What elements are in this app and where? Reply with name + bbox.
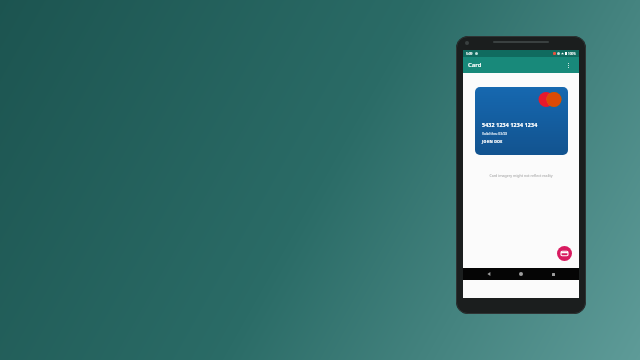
button[interactable]: Add card [557, 246, 572, 261]
button[interactable]: Home [515, 268, 527, 280]
button[interactable]: More options [562, 59, 574, 71]
button[interactable]: Recents [547, 268, 559, 280]
staticText: JOHN DOE [482, 139, 503, 144]
button[interactable]: 5432 1234 1234 1234 [475, 87, 568, 155]
staticText: 5:09 [466, 52, 473, 56]
staticText: Valid thru 03/23 [482, 131, 508, 136]
button[interactable]: Back [483, 268, 495, 280]
staticText: 100% [568, 52, 576, 56]
staticText: Card [468, 61, 482, 69]
staticText: Card imagery might not reflect reality [489, 173, 553, 178]
staticText: 5432 1234 1234 1234 [482, 121, 538, 128]
